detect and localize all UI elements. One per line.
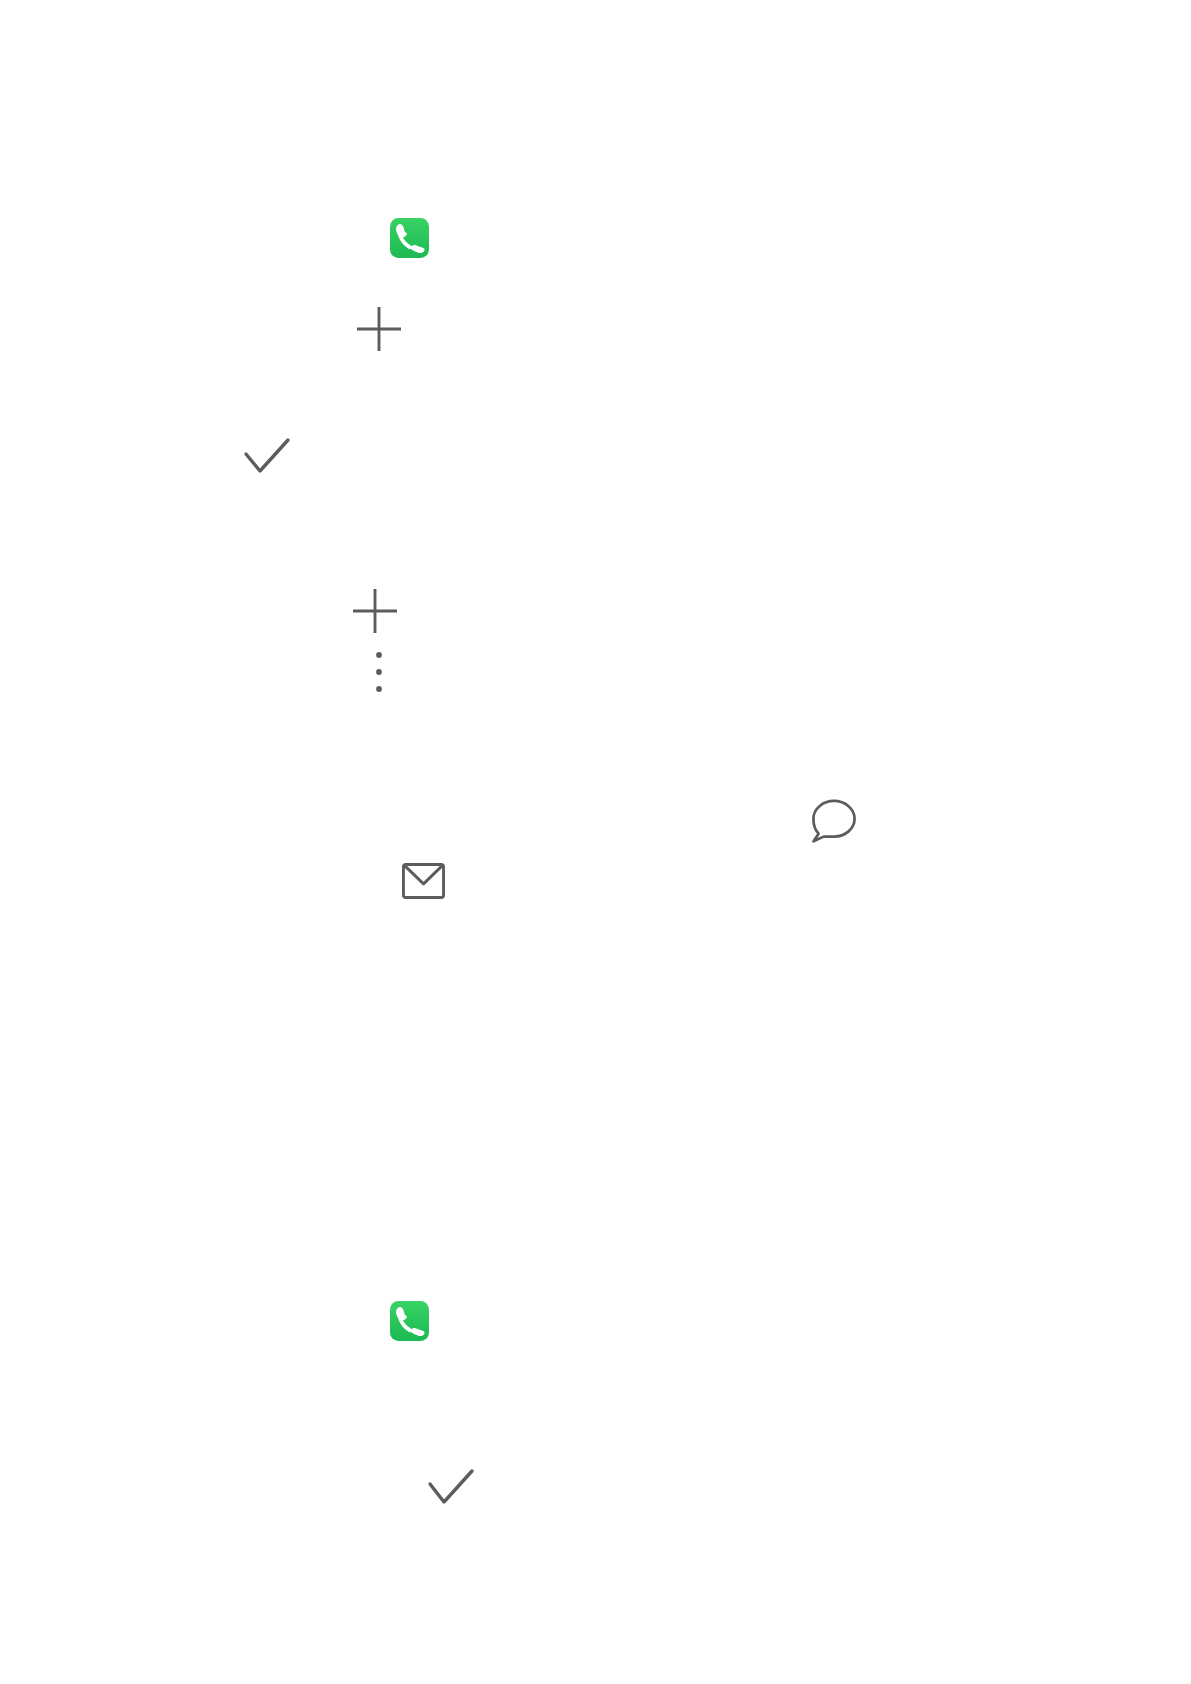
button[interactable]: Call [390,1301,429,1341]
button[interactable]: Add [345,581,405,641]
button[interactable]: Done [422,1463,480,1510]
button[interactable]: Call [390,218,429,258]
button[interactable]: Add [349,299,409,359]
button[interactable]: Done [238,432,296,479]
button[interactable]: More options [365,645,393,699]
button[interactable]: Email [402,863,445,899]
button[interactable]: Message [812,798,856,842]
